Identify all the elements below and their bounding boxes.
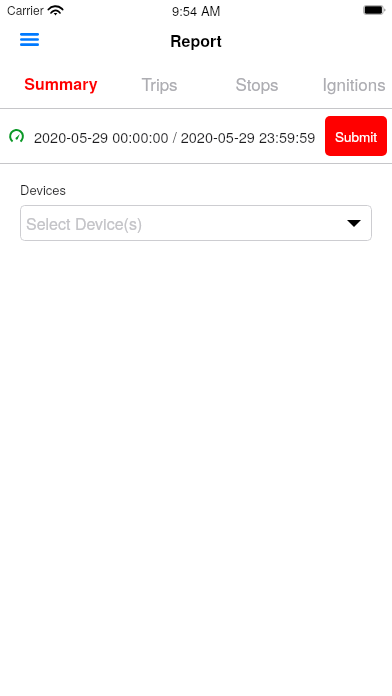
button[interactable]: Submit <box>325 116 387 156</box>
staticText: Report <box>170 29 222 52</box>
staticText: Devices <box>20 180 67 199</box>
staticText: Carrier <box>7 1 44 18</box>
button[interactable]: Summary <box>0 58 121 108</box>
staticText: Submit <box>335 127 378 146</box>
staticText: Trips <box>141 71 178 95</box>
button[interactable]: Select Device(s) <box>20 205 372 241</box>
staticText: 9:54 AM <box>172 1 221 20</box>
button[interactable]: Open navigation menu <box>12 22 46 56</box>
staticText: Summary <box>24 72 98 95</box>
staticText: Ignitions <box>322 71 386 95</box>
staticText: 2020-05-29 00:00:00 / 2020-05-29 23:59:5… <box>34 126 316 147</box>
button[interactable]: Ignitions <box>316 58 392 108</box>
staticText: Stops <box>235 71 279 95</box>
button[interactable]: Stops <box>197 58 316 108</box>
staticText: Select Device(s) <box>26 212 347 235</box>
button[interactable]: Trips <box>121 58 197 108</box>
button[interactable]: 2020-05-29 00:00:00 / 2020-05-29 23:59:5… <box>9 109 316 163</box>
